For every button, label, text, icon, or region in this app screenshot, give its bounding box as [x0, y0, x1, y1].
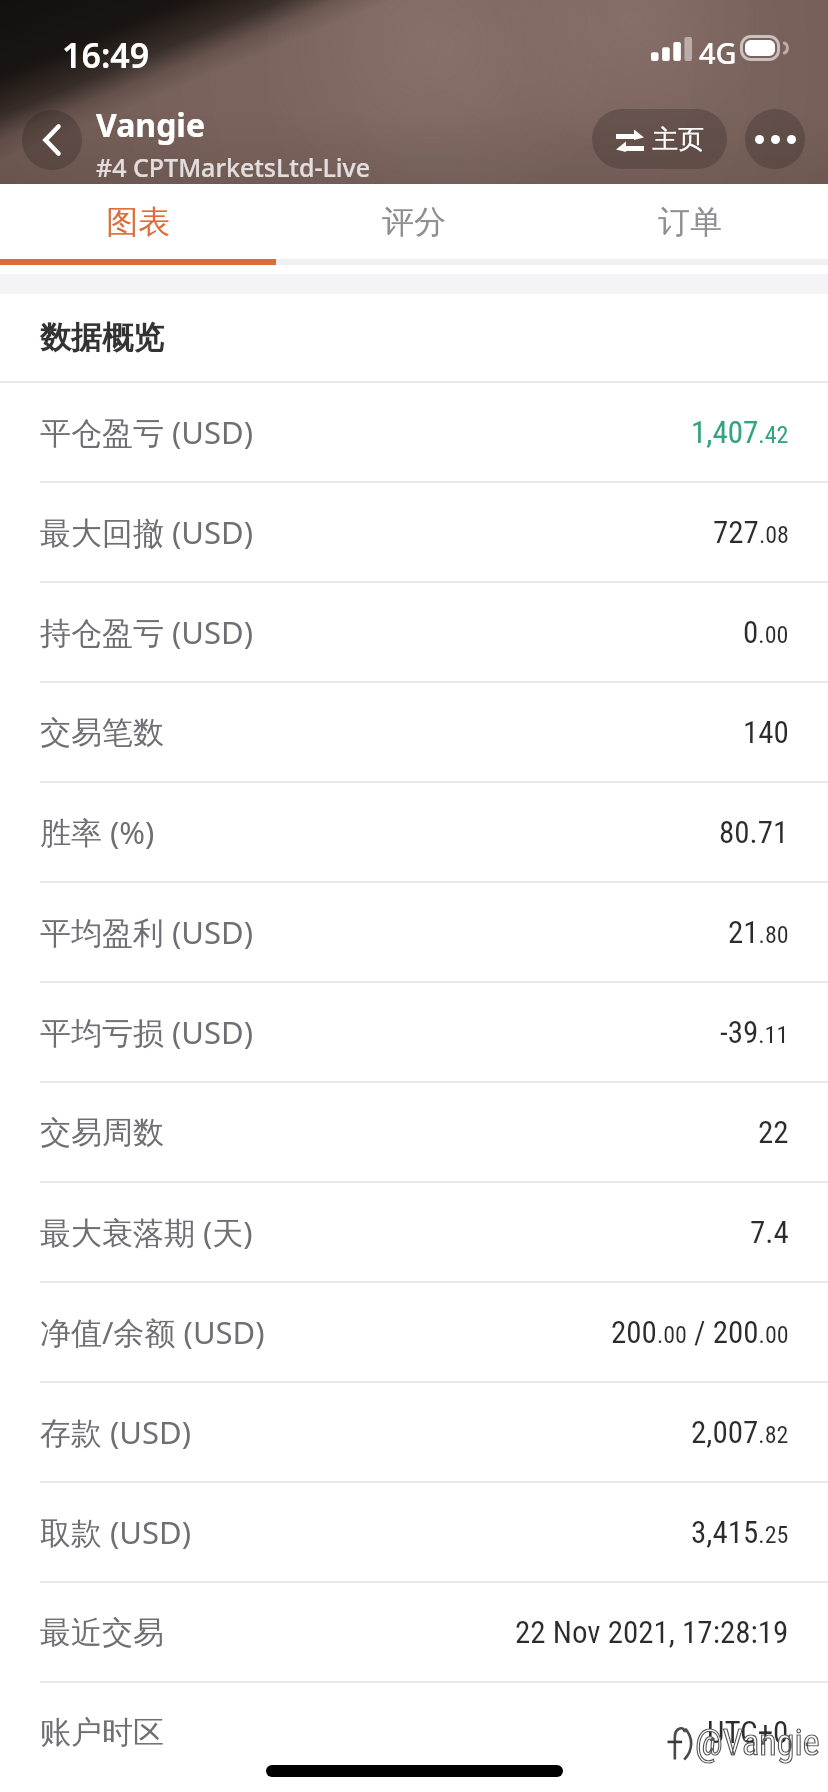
- staticText: 交易周数: [40, 1113, 164, 1152]
- button[interactable]: 最大回撤 (USD): [0, 483, 828, 581]
- staticText: Vangie: [96, 103, 206, 147]
- staticText: 7.4: [750, 1214, 789, 1250]
- staticText: 727.08: [713, 514, 789, 550]
- staticText: 订单: [658, 202, 722, 242]
- staticText: 取款 (USD): [40, 1511, 191, 1553]
- button[interactable]: 净值/余额 (USD): [0, 1283, 828, 1381]
- staticText: 净值/余额 (USD): [40, 1311, 265, 1353]
- staticText: 4G: [699, 33, 737, 72]
- button[interactable]: 平均盈利 (USD): [0, 883, 828, 981]
- button[interactable]: 图表: [0, 184, 276, 265]
- button[interactable]: 平仓盈亏 (USD): [0, 383, 828, 481]
- staticText: 胜率 (%): [40, 811, 155, 853]
- staticText: 持仓盈亏 (USD): [40, 611, 253, 653]
- staticText: 账户时区: [40, 1713, 164, 1752]
- staticText: 存款 (USD): [40, 1411, 191, 1453]
- button[interactable]: 平均亏损 (USD): [0, 983, 828, 1081]
- staticText: 平仓盈亏 (USD): [40, 411, 253, 453]
- staticText: 评分: [382, 202, 446, 242]
- staticText: 主页: [652, 123, 704, 156]
- staticText: @Vangie: [695, 1722, 820, 1764]
- button[interactable]: 交易周数: [0, 1083, 828, 1181]
- button[interactable]: 胜率 (%): [0, 783, 828, 881]
- staticText: 最近交易: [40, 1613, 164, 1652]
- button[interactable]: 交易笔数: [0, 683, 828, 781]
- staticText: UTC+0: [707, 1714, 789, 1750]
- staticText: 22: [758, 1114, 789, 1150]
- button[interactable]: 主页: [592, 109, 727, 169]
- staticText: 交易笔数: [40, 713, 164, 752]
- button[interactable]: 存款 (USD): [0, 1383, 828, 1481]
- button[interactable]: 取款 (USD): [0, 1483, 828, 1581]
- staticText: 3,415.25: [691, 1514, 789, 1550]
- staticText: 16:49: [62, 32, 150, 78]
- staticText: 数据概览: [40, 318, 164, 357]
- staticText: 21.80: [728, 914, 789, 950]
- button[interactable]: Back: [22, 110, 82, 170]
- button[interactable]: 账户时区: [0, 1683, 828, 1781]
- staticText: 最大回撤 (USD): [40, 511, 253, 553]
- staticText: @Vangie: [695, 1722, 820, 1764]
- staticText: 0.00: [743, 614, 789, 650]
- button[interactable]: 最近交易: [0, 1583, 828, 1681]
- button[interactable]: 最大衰落期 (天): [0, 1183, 828, 1281]
- button[interactable]: 持仓盈亏 (USD): [0, 583, 828, 681]
- staticText: 2,007.82: [691, 1414, 789, 1450]
- staticText: 1,407.42: [691, 414, 789, 450]
- staticText: 80.71: [719, 814, 789, 850]
- button[interactable]: 评分: [276, 184, 552, 265]
- staticText: 平均亏损 (USD): [40, 1011, 253, 1053]
- button[interactable]: More options: [745, 109, 805, 169]
- staticText: 200.00 / 200.00: [611, 1314, 789, 1350]
- staticText: -39.11: [720, 1014, 789, 1050]
- staticText: #4 CPTMarketsLtd-Live: [96, 150, 371, 184]
- staticText: 平均盈利 (USD): [40, 911, 253, 953]
- button[interactable]: 订单: [552, 184, 828, 265]
- staticText: 最大衰落期 (天): [40, 1211, 253, 1253]
- staticText: 140: [743, 714, 789, 750]
- staticText: 图表: [106, 202, 170, 242]
- staticText: 22 Nov 2021, 17:28:19: [515, 1614, 789, 1650]
